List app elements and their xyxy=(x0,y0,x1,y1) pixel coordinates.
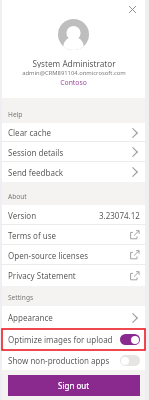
button[interactable]: Terms of use xyxy=(2,225,145,245)
button[interactable]: Open-source licenses xyxy=(2,245,145,265)
staticText: Help xyxy=(8,110,23,119)
staticText: Version xyxy=(8,210,37,221)
staticText: Appearance xyxy=(8,312,53,323)
button[interactable]: Appearance xyxy=(2,306,145,329)
button[interactable]: Session details xyxy=(2,142,145,162)
button[interactable]: Sign out xyxy=(8,375,140,396)
staticText: 3.23074.12 xyxy=(99,210,140,221)
staticText: Send feedback xyxy=(8,167,64,178)
staticText: Contoso xyxy=(60,78,87,87)
button[interactable]: Version xyxy=(2,205,145,225)
staticText: Settings xyxy=(8,293,34,302)
button[interactable]: Contoso xyxy=(60,77,87,87)
staticText: About xyxy=(8,192,27,201)
staticText: Terms of use xyxy=(8,230,57,241)
button[interactable]: Privacy Statement xyxy=(2,265,145,286)
staticText: admin@CRM891104.onmicrosoft.com xyxy=(22,69,126,77)
button[interactable]: Clear cache xyxy=(2,123,145,142)
staticText: Session details xyxy=(8,147,64,158)
button[interactable]: On xyxy=(120,334,140,345)
staticText: Show non-production apps xyxy=(8,355,110,366)
button[interactable]: Close xyxy=(125,2,139,16)
button[interactable]: Send feedback xyxy=(2,162,145,182)
button[interactable]: Optimize images for upload xyxy=(2,329,145,350)
button[interactable]: Off xyxy=(120,355,140,366)
staticText: Optimize images for upload xyxy=(8,334,113,345)
staticText: System Administrator xyxy=(32,58,116,68)
staticText: Clear cache xyxy=(8,127,52,138)
staticText: Open-source licenses xyxy=(8,250,88,261)
button[interactable]: Show non-production apps xyxy=(2,350,145,370)
staticText: Sign out xyxy=(58,380,90,391)
staticText: Privacy Statement xyxy=(8,270,76,281)
